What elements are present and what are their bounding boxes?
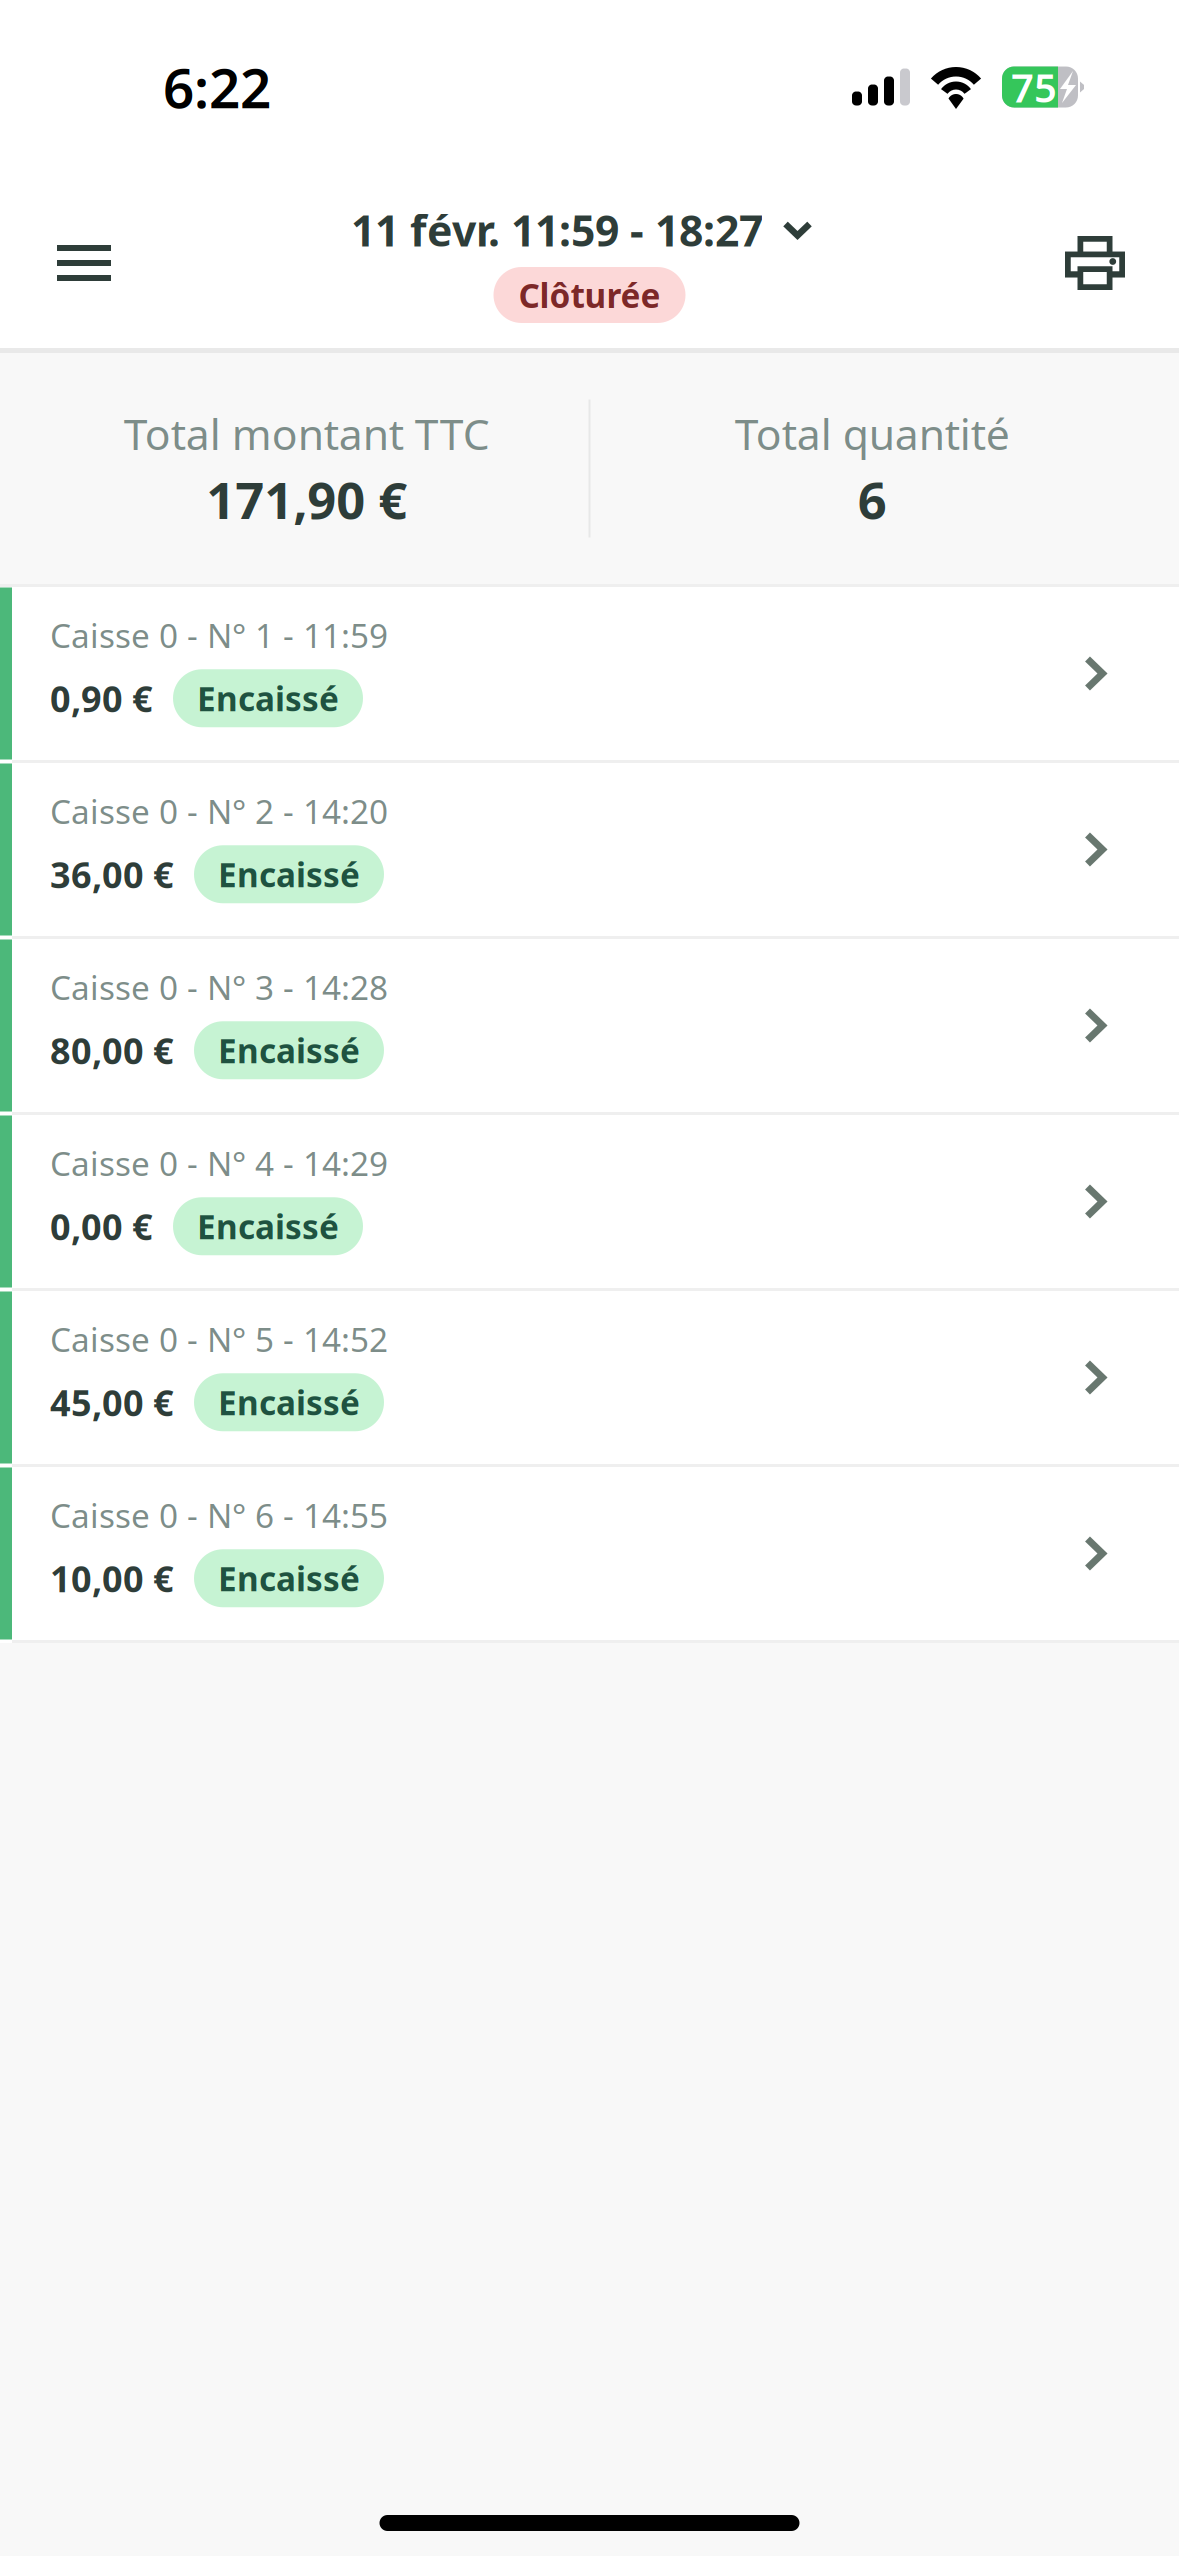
button[interactable]: 11 févr. 11:59 - 18:27: [351, 209, 828, 251]
staticText: Total quantité: [735, 405, 1010, 462]
staticText: Caisse 0 - N° 5 - 14:52: [50, 1317, 388, 1361]
staticText: Encaissé: [218, 1380, 360, 1424]
staticText: Encaissé: [218, 852, 360, 896]
staticText: 75: [1011, 60, 1057, 113]
button[interactable]: Caisse 0 - N° 5 - 14:52: [0, 1291, 1179, 1464]
staticText: 6:22: [163, 51, 271, 123]
staticText: 10,00 €: [50, 1554, 174, 1602]
staticText: 80,00 €: [50, 1026, 174, 1074]
staticText: 0,00 €: [50, 1202, 153, 1250]
button[interactable]: Caisse 0 - N° 3 - 14:28: [0, 939, 1179, 1112]
staticText: Clôturée: [518, 273, 660, 317]
button[interactable]: Caisse 0 - N° 2 - 14:20: [0, 763, 1179, 936]
staticText: Caisse 0 - N° 3 - 14:28: [50, 965, 388, 1009]
staticText: Encaissé: [197, 1204, 339, 1248]
staticText: Caisse 0 - N° 4 - 14:29: [50, 1141, 388, 1185]
button[interactable]: Imprimer: [1040, 208, 1150, 318]
staticText: Encaissé: [218, 1556, 360, 1600]
staticText: Caisse 0 - N° 2 - 14:20: [50, 789, 388, 833]
staticText: Encaissé: [218, 1028, 360, 1072]
staticText: Caisse 0 - N° 6 - 14:55: [50, 1493, 388, 1537]
staticText: 11 févr. 11:59 - 18:27: [351, 202, 763, 258]
button[interactable]: Menu: [29, 208, 139, 318]
button[interactable]: Caisse 0 - N° 6 - 14:55: [0, 1467, 1179, 1640]
button[interactable]: Caisse 0 - N° 4 - 14:29: [0, 1115, 1179, 1288]
staticText: Encaissé: [197, 676, 339, 720]
staticText: Total montant TTC: [124, 405, 490, 462]
staticText: 171,90 €: [206, 466, 407, 533]
button[interactable]: Caisse 0 - N° 1 - 11:59: [0, 587, 1179, 760]
staticText: 36,00 €: [50, 850, 174, 898]
staticText: Caisse 0 - N° 1 - 11:59: [50, 613, 388, 657]
staticText: 45,00 €: [50, 1378, 174, 1426]
staticText: 6: [858, 466, 887, 533]
staticText: 0,90 €: [50, 674, 153, 722]
